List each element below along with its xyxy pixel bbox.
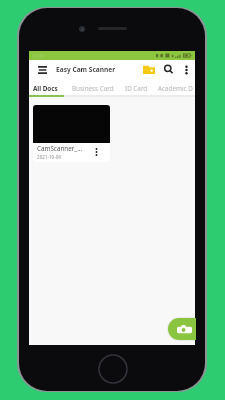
- staticText: Business Card: [72, 84, 114, 93]
- button[interactable]: ID Card: [125, 82, 148, 95]
- button[interactable]: Business Card: [72, 82, 114, 95]
- button[interactable]: More options: [180, 61, 193, 78]
- button[interactable]: New folder: [140, 61, 157, 78]
- staticText: Easy Cam Scanner: [56, 65, 116, 74]
- staticText: 2021-10-04: [37, 154, 61, 160]
- button[interactable]: Open navigation menu: [35, 61, 49, 78]
- button[interactable]: CamScanner_...: [33, 105, 110, 162]
- staticText: ID Card: [125, 84, 148, 93]
- button[interactable]: Academic D: [158, 82, 193, 95]
- staticText: CamScanner_...: [37, 144, 83, 153]
- button[interactable]: Scan document with camera: [168, 318, 196, 340]
- staticText: 14:40: [32, 53, 44, 59]
- button[interactable]: Document options: [90, 145, 102, 159]
- staticText: Academic D: [158, 84, 193, 93]
- button[interactable]: All Docs: [33, 82, 58, 95]
- staticText: All Docs: [33, 84, 58, 93]
- button[interactable]: Search: [161, 61, 176, 78]
